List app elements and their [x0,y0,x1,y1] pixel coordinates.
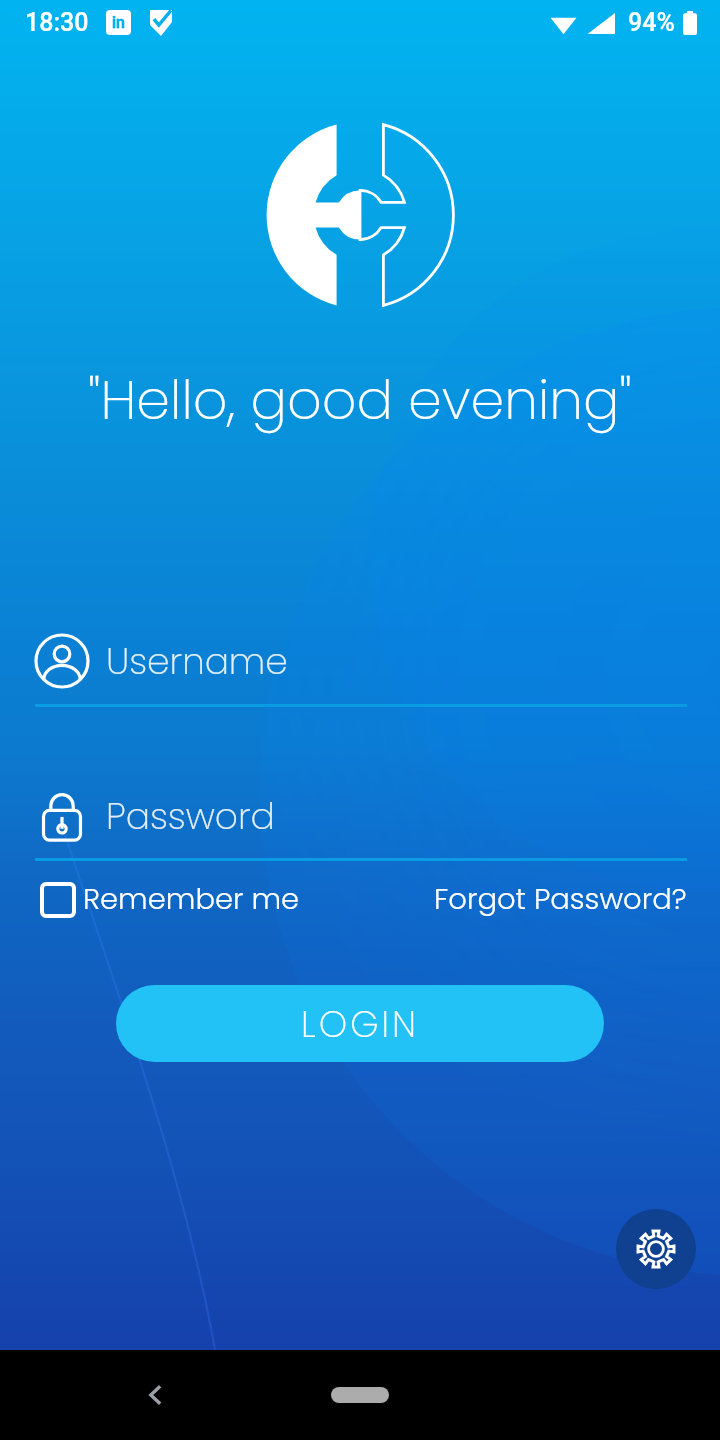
button[interactable]: Settings [616,1209,696,1289]
button[interactable]: LOGIN [116,985,604,1062]
button[interactable]: Back [128,1367,184,1423]
staticText: in [112,13,125,32]
staticText: Password [106,791,275,841]
staticText: LOGIN [301,999,420,1049]
staticText: Username [106,636,288,686]
button[interactable]: Home [331,1387,389,1403]
staticText: Forgot Password? [434,879,687,920]
button[interactable]: Forgot Password? [434,879,687,920]
button[interactable]: Password [34,787,686,845]
staticText: 18:30 [25,8,89,37]
staticText: 94% [628,8,675,37]
button[interactable]: Username [34,632,686,690]
staticText: "Hello, good evening" [88,362,632,438]
button[interactable]: Remember me [42,879,300,920]
staticText: Remember me [83,879,300,920]
